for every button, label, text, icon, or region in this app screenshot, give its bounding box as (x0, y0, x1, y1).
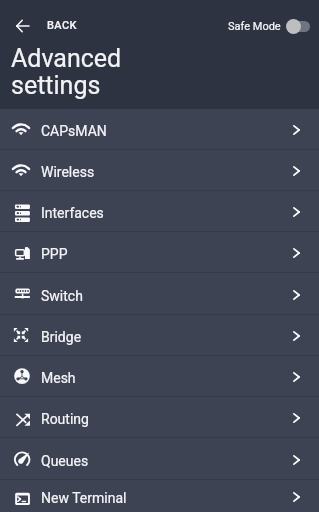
staticText: Interfaces (41, 205, 104, 221)
button[interactable]: PPP (0, 232, 319, 273)
staticText: Advanced settings (11, 44, 122, 100)
staticText: PPP (41, 246, 68, 262)
staticText: Mesh (41, 370, 76, 386)
button[interactable]: Queues (0, 438, 319, 480)
button[interactable]: Back (8, 13, 85, 38)
button[interactable]: Routing (0, 397, 319, 438)
staticText: Queues (41, 453, 89, 469)
staticText: Switch (41, 288, 83, 304)
button[interactable]: Interfaces (0, 191, 319, 232)
staticText: Routing (41, 411, 89, 427)
other: Safe Mode toggle (286, 18, 310, 34)
staticText: CAPsMAN (41, 123, 107, 139)
button[interactable]: Wireless (0, 150, 319, 191)
button[interactable]: CAPsMAN (0, 109, 319, 150)
button[interactable]: Switch (0, 273, 319, 315)
staticText: Safe Mode (228, 20, 281, 33)
staticText: BACK (47, 19, 77, 32)
button[interactable]: Safe Mode (222, 12, 316, 40)
other: Back (16, 20, 29, 32)
button[interactable]: Mesh (0, 356, 319, 397)
button[interactable]: New Terminal (0, 480, 319, 512)
staticText: New Terminal (41, 490, 127, 506)
staticText: Wireless (41, 164, 95, 180)
button[interactable]: Bridge (0, 315, 319, 356)
staticText: Bridge (41, 329, 82, 345)
